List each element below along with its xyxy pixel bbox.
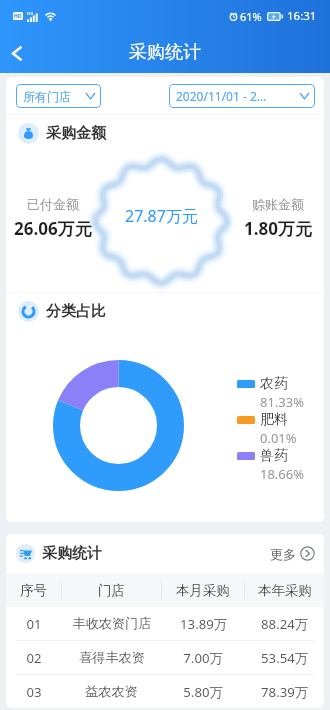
staticText: 02	[26, 649, 42, 667]
staticText: 7.00万	[183, 649, 223, 667]
staticText: 2020/11/01 - 2…	[176, 88, 300, 104]
button[interactable]: 采购统计	[16, 534, 315, 573]
staticText: 01	[26, 615, 42, 633]
staticText: 兽药	[260, 447, 288, 465]
staticText: 农药	[260, 375, 288, 393]
staticText: 27.87万元	[125, 205, 198, 227]
staticText: 61%	[240, 9, 262, 24]
button[interactable]: 01	[6, 607, 324, 640]
staticText: 更多	[270, 546, 296, 562]
staticText: 喜得丰农资	[79, 649, 145, 666]
staticText: 26.06万元	[14, 217, 92, 240]
staticText: 已付金额	[27, 196, 79, 212]
staticText: 采购金额	[46, 124, 106, 143]
staticText: 所有门店	[23, 89, 86, 104]
staticText: 采购统计	[42, 544, 102, 563]
staticText: 1.80万元	[244, 217, 312, 240]
staticText: 分类占比	[46, 302, 106, 321]
staticText: 18.66%	[260, 465, 305, 483]
staticText: 丰收农资门店	[72, 615, 152, 632]
staticText: HD	[14, 13, 22, 20]
button[interactable]: Back	[0, 36, 34, 70]
staticText: 81.33%	[260, 393, 305, 411]
staticText: 益农农资	[85, 683, 138, 700]
button[interactable]: 2020/11/01 - 2…	[169, 84, 315, 108]
staticText: 本年采购	[258, 582, 312, 599]
staticText: 序号	[20, 582, 47, 599]
staticText: 本月采购	[176, 582, 230, 599]
button[interactable]: 所有门店	[16, 84, 101, 108]
staticText: 门店	[98, 582, 125, 599]
staticText: 88.24万	[261, 615, 308, 633]
staticText: 16:31	[287, 8, 317, 24]
staticText: 肥料	[260, 411, 288, 429]
staticText: 53.54万	[261, 649, 308, 667]
staticText: 赊账金额	[252, 196, 304, 212]
staticText: 采购统计	[129, 41, 201, 64]
staticText: 03	[26, 683, 42, 701]
button[interactable]: 03	[6, 675, 324, 708]
staticText: 78.39万	[261, 683, 308, 701]
staticText: 13.89万	[180, 615, 227, 633]
staticText: 5.80万	[183, 683, 223, 701]
staticText: 0.01%	[260, 429, 297, 447]
button[interactable]: 02	[6, 641, 324, 674]
